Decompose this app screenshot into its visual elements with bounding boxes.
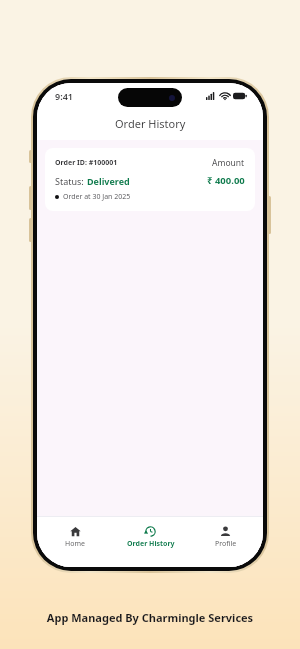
button[interactable]: Home <box>37 523 113 552</box>
staticText: Profile <box>215 539 237 549</box>
staticText: Order at 30 Jan 2025 <box>63 192 131 202</box>
button[interactable]: Order ID: #100001 <box>45 148 255 211</box>
other: Profile <box>220 526 231 537</box>
other: Order History <box>145 526 156 537</box>
staticText: ₹ 400.00 <box>207 174 245 187</box>
staticText: App Managed By Charmingle Services <box>0 610 300 625</box>
staticText: 9:41 <box>55 90 73 102</box>
staticText: Order History <box>127 539 175 549</box>
button[interactable]: Order History <box>113 523 188 552</box>
staticText: Delivered <box>87 175 130 187</box>
other: Home <box>70 526 81 537</box>
staticText: Home <box>65 539 85 549</box>
staticText: Amount <box>212 157 245 169</box>
staticText: Status: <box>55 175 87 187</box>
staticText: Order ID: #100001 <box>55 158 212 168</box>
button[interactable]: Profile <box>188 523 263 552</box>
staticText: Order History <box>115 116 186 131</box>
